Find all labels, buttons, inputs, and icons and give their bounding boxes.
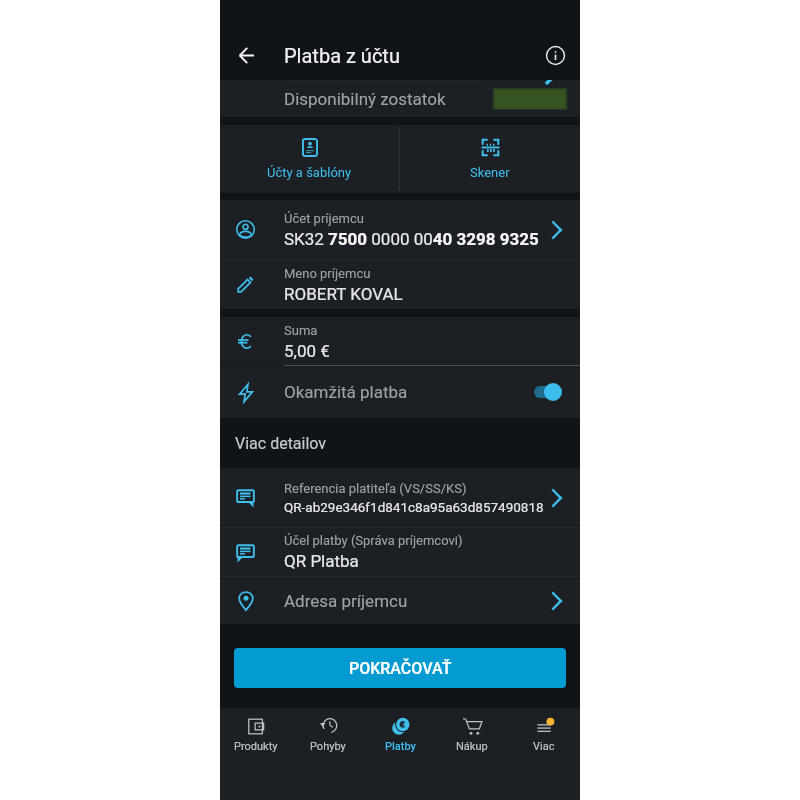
button[interactable]: Viac [508, 708, 580, 800]
button[interactable]: Platby [364, 708, 436, 800]
button[interactable]: Meno príjemcu [220, 260, 580, 309]
button[interactable]: Účet príjemcu [220, 200, 580, 259]
button[interactable]: POKRAČOVAŤ [234, 648, 566, 688]
staticText: QR-ab29e346f1d841c8a95a63d857490818 [284, 499, 544, 515]
staticText: Okamžitá platba [284, 382, 408, 402]
button[interactable]: Nákup [436, 708, 508, 800]
staticText: Produkty [234, 740, 278, 753]
button[interactable]: Okamžitá platba [220, 366, 580, 418]
staticText: Adresa príjemcu [284, 591, 408, 611]
staticText: Účel platby (Správa príjemcovi) [284, 533, 463, 548]
staticText: Nákup [456, 740, 488, 753]
staticText: SK32 7500 0000 0040 3298 9325 [284, 229, 539, 249]
staticText: Platba z účtu [284, 44, 400, 67]
staticText: Pohyby [310, 740, 346, 753]
button[interactable]: Produkty [220, 708, 292, 800]
staticText: Suma [284, 323, 318, 338]
staticText: Meno príjemcu [284, 266, 371, 281]
staticText: Platby [385, 740, 416, 753]
staticText: POKRAČOVAŤ [349, 659, 452, 678]
button[interactable]: Skener [400, 125, 580, 193]
staticText: Skener [470, 165, 510, 180]
staticText: Účty a šablóny [267, 165, 352, 180]
staticText: 5,00 € [284, 341, 330, 361]
staticText: Viac [533, 740, 555, 753]
staticText: Viac detailov [235, 434, 327, 453]
staticText: Referencia platiteľa (VS/SS/KS) [284, 481, 467, 496]
button[interactable]: Pohyby [292, 708, 364, 800]
staticText: Disponibilný zostatok [284, 89, 446, 109]
button[interactable]: Účel platby (Správa príjemcovi) [220, 528, 580, 576]
staticText: QR Platba [284, 551, 359, 571]
button[interactable]: Back [231, 40, 261, 70]
button[interactable]: Referencia platiteľa (VS/SS/KS) [220, 468, 580, 527]
button[interactable]: Info [540, 40, 570, 70]
staticText: ROBERT KOVAL [284, 284, 403, 304]
button[interactable]: Adresa príjemcu [220, 577, 580, 624]
button[interactable]: Suma [220, 317, 580, 366]
button[interactable]: Účty a šablóny [220, 125, 399, 193]
staticText: Účet príjemcu [284, 211, 364, 226]
